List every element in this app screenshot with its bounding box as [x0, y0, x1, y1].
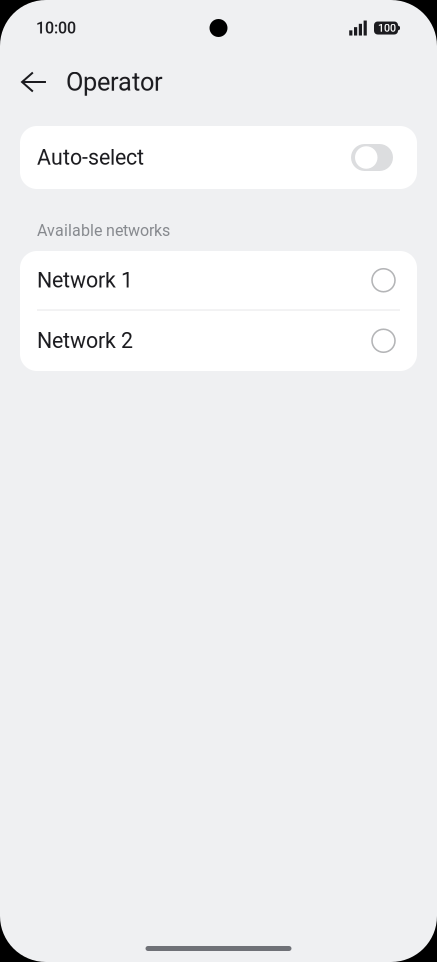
staticText: Available networks — [37, 221, 170, 240]
button[interactable]: Network 1 — [20, 251, 417, 309]
staticText: Network 2 — [37, 328, 133, 353]
staticText: Auto-select — [37, 145, 144, 170]
button[interactable]: Back — [8, 56, 60, 108]
staticText: 100 — [378, 22, 396, 34]
staticText: Operator — [66, 67, 163, 97]
button[interactable]: Network 2 — [20, 310, 417, 371]
staticText: 10:00 — [36, 19, 76, 37]
staticText: Network 1 — [37, 268, 133, 293]
button[interactable]: Auto-select — [20, 126, 417, 189]
